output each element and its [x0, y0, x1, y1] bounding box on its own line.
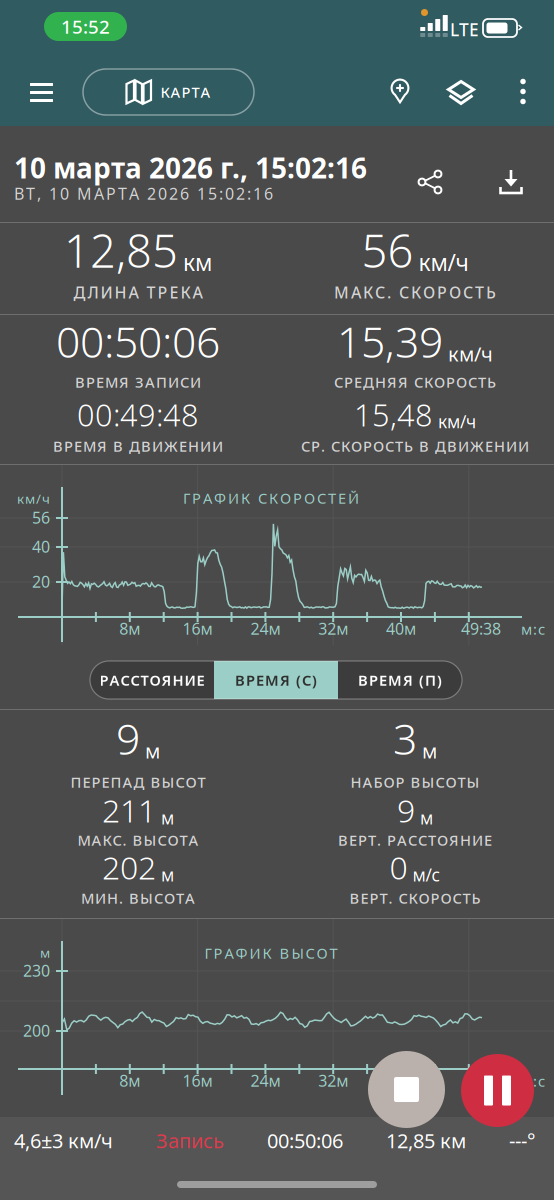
staticText: 56	[32, 507, 50, 528]
staticText: 32м	[318, 618, 348, 639]
staticText: 0	[389, 846, 407, 888]
staticText: 9	[116, 710, 140, 767]
button[interactable]: В Р Е М Я ( П )	[338, 661, 462, 699]
button[interactable]: Download track	[486, 156, 536, 208]
staticText: Г Р А Ф И К В Ы С О Т	[204, 943, 337, 963]
button[interactable]: Add waypoint	[378, 66, 422, 116]
staticText: М А К С . С К О Р О С Т Ь	[334, 282, 496, 303]
button[interactable]: Map layers	[435, 68, 487, 122]
staticText: 211	[102, 789, 156, 831]
button[interactable]: Pause recording	[461, 1054, 534, 1127]
button[interactable]: More options	[505, 67, 541, 116]
staticText: м	[145, 737, 160, 764]
button[interactable]: В Р Е М Я ( С )	[214, 661, 338, 699]
staticText: LTE	[450, 18, 479, 41]
staticText: 40м	[386, 618, 416, 639]
staticText: м : с	[521, 619, 545, 639]
staticText: В Р Е М Я З А П И С И	[75, 372, 201, 392]
staticText: м	[40, 944, 50, 961]
staticText: 16м	[183, 618, 213, 639]
staticText: 8м	[119, 618, 140, 639]
staticText: 56	[361, 220, 413, 280]
staticText: 3	[393, 710, 417, 767]
staticText: 49:38	[461, 618, 501, 639]
staticText: 32м	[318, 1070, 348, 1091]
staticText: 15,48	[354, 394, 433, 435]
staticText: км/ч	[438, 410, 476, 433]
button[interactable]: К А Р Т А	[83, 69, 254, 115]
staticText: 00:49:48	[77, 394, 199, 435]
staticText: 15:52	[61, 14, 110, 39]
staticText: 8м	[119, 1070, 140, 1091]
staticText: Н А Б О Р В Ы С О Т Ы	[350, 772, 479, 792]
staticText: Р А С С Т О Я Н И Е	[99, 670, 204, 690]
staticText: км/ч	[418, 247, 468, 277]
staticText: м	[420, 806, 433, 829]
staticText: 00:50:06	[56, 313, 220, 370]
button[interactable]: Share track	[405, 156, 455, 208]
staticText: 00:50:06	[267, 1127, 343, 1154]
staticText: км	[183, 247, 212, 277]
staticText: км/ч	[448, 340, 493, 367]
staticText: 20	[32, 571, 50, 592]
button[interactable]: Stop recording	[368, 1051, 445, 1128]
staticText: В Р Е М Я ( П )	[358, 670, 442, 690]
staticText: 15,39	[337, 313, 443, 370]
button[interactable]: Menu	[14, 67, 69, 118]
staticText: М И Н . В Ы С О Т А	[81, 888, 195, 908]
staticText: С Р Е Д Н Я Я С К О Р О С Т Ь	[334, 372, 496, 392]
staticText: 9	[397, 789, 415, 831]
staticText: К А Р Т А	[160, 82, 210, 102]
staticText: 24м	[250, 618, 280, 639]
staticText: к м / ч	[17, 490, 50, 507]
staticText: М А К С . В Ы С О Т А	[77, 830, 198, 850]
staticText: 40	[32, 536, 50, 557]
staticText: 12,85	[64, 220, 178, 280]
staticText: 4,6±3 км/ч	[14, 1127, 113, 1154]
staticText: м : с	[521, 1071, 545, 1091]
staticText: м	[161, 863, 174, 886]
staticText: м/с	[412, 863, 440, 886]
staticText: ---°	[509, 1127, 536, 1154]
staticText: П Е Р Е П А Д В Ы С О Т	[70, 772, 205, 792]
staticText: В Р Е М Я В Д В И Ж Е Н И И	[53, 436, 223, 456]
staticText: Запись	[156, 1127, 224, 1154]
staticText: С Р . С К О Р О С Т Ь В Д В И Ж Е Н И И	[301, 436, 529, 456]
staticText: 202	[102, 846, 156, 888]
staticText: Д Л И Н А Т Р Е К А	[73, 282, 202, 303]
staticText: 230	[23, 960, 50, 981]
staticText: 24м	[250, 1070, 280, 1091]
staticText: В Е Р Т . С К О Р О С Т Ь	[349, 888, 480, 908]
staticText: 16м	[183, 1070, 213, 1091]
staticText: м	[161, 806, 174, 829]
staticText: 12,85 км	[386, 1127, 466, 1154]
staticText: м	[422, 737, 437, 764]
staticText: В Т , 1 0 М А Р Т А 2 0 2 6 1 5 : 0 2 : …	[14, 183, 273, 204]
staticText: 200	[23, 1020, 50, 1041]
staticText: Г Р А Ф И К С К О Р О С Т Е Й	[183, 488, 359, 508]
button[interactable]: Р А С С Т О Я Н И Е	[90, 661, 214, 699]
staticText: 10 марта 2026 г., 15:02:16	[14, 149, 367, 186]
staticText: В Р Е М Я ( С )	[235, 670, 317, 690]
staticText: В Е Р Т . Р А С С Т О Я Н И Е	[338, 830, 492, 850]
